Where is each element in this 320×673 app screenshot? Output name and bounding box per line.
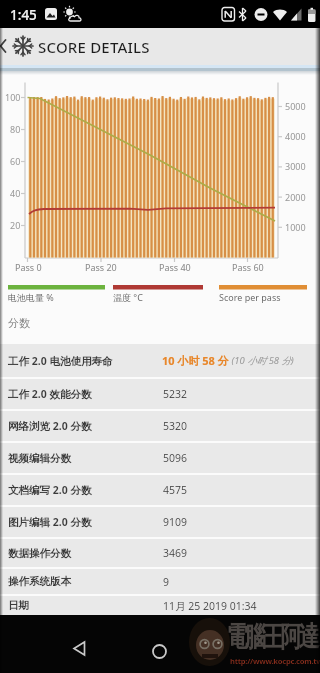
staticText: 1:45 xyxy=(10,6,37,24)
staticText: 工作 2.0 电池使用寿命 xyxy=(8,354,113,368)
staticText: 9109 xyxy=(163,515,188,529)
staticText: 11月 25 2019 01:34 xyxy=(163,599,257,613)
staticText: 5096 xyxy=(163,451,188,465)
staticText: 3469 xyxy=(163,546,188,560)
staticText: http://www.kocpc.com.tw xyxy=(230,656,320,666)
staticText: SCORE DETAILS xyxy=(38,37,150,57)
button[interactable]: 日期 xyxy=(0,596,320,615)
staticText: Pass 60 xyxy=(232,261,264,273)
staticText: Pass 0 xyxy=(15,261,42,273)
staticText: 电池电量 % xyxy=(8,291,54,303)
staticText: 操作系统版本 xyxy=(8,575,71,588)
button[interactable] xyxy=(68,642,92,666)
staticText: 数据操作分数 xyxy=(8,547,71,560)
staticText: Score per pass xyxy=(219,291,281,303)
button[interactable]: 网络浏览 2.0 分数 xyxy=(0,411,320,441)
staticText: (10 小时 58 分) xyxy=(229,354,294,367)
staticText: 5232 xyxy=(163,387,188,401)
button[interactable] xyxy=(147,645,171,669)
staticText: 工作 2.0 效能分数 xyxy=(8,387,92,401)
button[interactable]: SCORE DETAILS xyxy=(0,28,320,65)
staticText: 温度 °C xyxy=(113,291,143,303)
staticText: 4000 xyxy=(285,130,306,142)
staticText: 视频编辑分数 xyxy=(8,452,71,465)
staticText: 图片编辑 2.0 分数 xyxy=(8,515,92,529)
staticText: 1000 xyxy=(285,221,306,233)
staticText: 5000 xyxy=(285,100,306,112)
button[interactable]: 文档编写 2.0 分数 xyxy=(0,475,320,505)
staticText: 3000 xyxy=(285,160,306,172)
staticText: Pass 40 xyxy=(159,261,191,273)
staticText: 60 xyxy=(10,155,21,167)
staticText: 80 xyxy=(10,123,21,135)
staticText: 40 xyxy=(10,187,21,199)
button[interactable]: 工作 2.0 效能分数 xyxy=(0,379,320,409)
staticText: 10 小时 58 分 xyxy=(162,353,229,368)
button[interactable]: 操作系统版本 xyxy=(0,569,320,594)
staticText: 100 xyxy=(5,91,21,103)
staticText: 文档编写 2.0 分数 xyxy=(8,483,92,497)
staticText: 電腦王阿達 xyxy=(228,620,318,654)
staticText: 5320 xyxy=(163,419,188,433)
staticText: 网络浏览 2.0 分数 xyxy=(8,419,92,433)
staticText: 分数 xyxy=(8,316,30,330)
staticText: 4575 xyxy=(163,483,188,497)
staticText: 2000 xyxy=(285,191,306,203)
staticText: 20 xyxy=(10,219,21,231)
staticText: Pass 20 xyxy=(85,261,117,273)
staticText: 9 xyxy=(163,575,170,589)
button[interactable]: 工作 2.0 电池使用寿命 xyxy=(0,344,320,377)
staticText: 日期 xyxy=(8,599,29,612)
button[interactable]: 数据操作分数 xyxy=(0,539,320,567)
button[interactable]: 图片编辑 2.0 分数 xyxy=(0,507,320,537)
button[interactable]: 视频编辑分数 xyxy=(0,443,320,473)
